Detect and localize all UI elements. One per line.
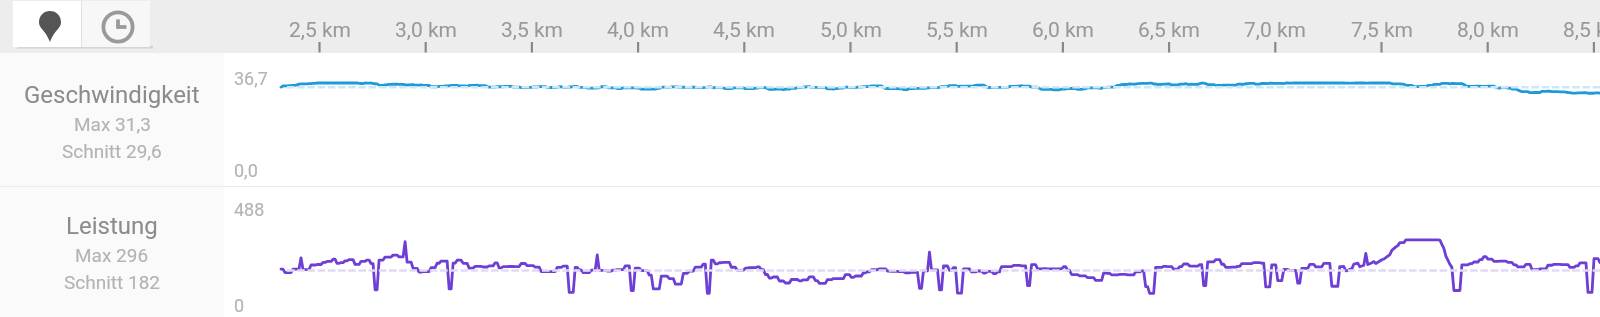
staticText: 6,0 km [1003,18,1123,43]
button[interactable]: Show elapsed time [82,1,150,47]
button[interactable]: Leistung [0,187,224,317]
button[interactable]: Geschwindigkeit [0,53,224,186]
staticText: 36,7 [234,68,268,89]
staticText: 7,0 km [1215,18,1335,43]
staticText: 6,5 km [1109,18,1229,43]
staticText: 4,5 km [684,18,804,43]
staticText: 3,0 km [366,18,486,43]
staticText: Leistung [66,212,158,240]
staticText: 0 [234,295,245,316]
staticText: 8,0 km [1428,18,1548,43]
staticText: Schnitt 29,6 [62,140,162,162]
staticText: 5,0 km [791,18,911,43]
staticText: 0,0 [234,160,258,181]
staticText: 7,5 km [1322,18,1442,43]
staticText: 3,5 km [472,18,592,43]
staticText: 5,5 km [897,18,1017,43]
staticText: Max 31,3 [74,113,151,135]
staticText: Schnitt 182 [64,271,160,293]
staticText: 2,5 km [260,18,380,43]
staticText: Geschwindigkeit [24,81,200,109]
staticText: 488 [234,199,265,220]
button[interactable]: Show map [13,1,81,47]
staticText: Max 296 [75,244,149,266]
staticText: 8,5 km [1534,18,1600,43]
staticText: 4,0 km [578,18,698,43]
